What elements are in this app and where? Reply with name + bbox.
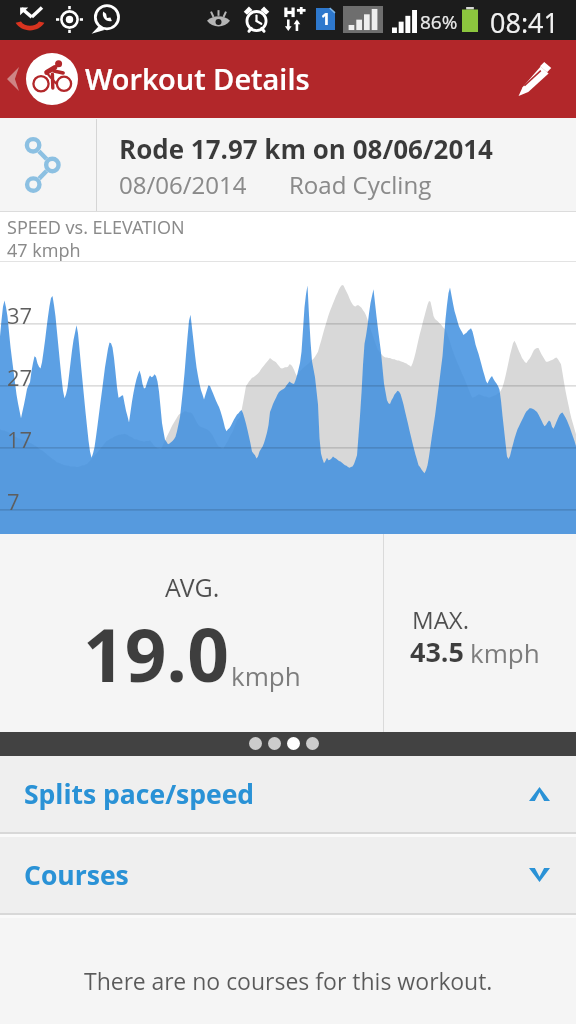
- staticText: Rode 17.97 km on 08/06/2014: [119, 131, 493, 166]
- button[interactable]: Back: [0, 40, 85, 118]
- button[interactable]: [287, 737, 300, 750]
- staticText: 1: [321, 8, 331, 30]
- staticText: Courses: [24, 857, 129, 893]
- staticText: kmph: [231, 658, 301, 693]
- staticText: Road Cycling: [289, 168, 432, 201]
- staticText: 27: [7, 362, 33, 392]
- button[interactable]: [268, 737, 281, 750]
- staticText: There are no courses for this workout.: [84, 965, 493, 996]
- staticText: 7: [7, 486, 20, 516]
- staticText: 43.5: [410, 633, 464, 670]
- button[interactable]: Route map: [0, 118, 96, 212]
- button[interactable]: Splits pace/speed: [0, 756, 576, 832]
- other: Collapse Splits pace/speed: [529, 787, 550, 801]
- button[interactable]: Courses: [0, 837, 576, 913]
- staticText: Workout Details: [85, 59, 310, 98]
- staticText: 37: [7, 300, 33, 330]
- staticText: MAX.: [412, 603, 470, 636]
- other: Expand Courses: [529, 868, 550, 882]
- staticText: 47 kmph: [7, 238, 81, 263]
- button[interactable]: [306, 737, 319, 750]
- other: Route map: [25, 137, 61, 193]
- staticText: 08:41: [490, 4, 559, 41]
- staticText: AVG.: [165, 570, 220, 604]
- other: Edit: [518, 62, 556, 96]
- button[interactable]: [249, 737, 262, 750]
- staticText: 86%: [420, 9, 458, 35]
- staticText: 08/06/2014: [119, 168, 247, 201]
- button[interactable]: Edit: [500, 40, 576, 118]
- staticText: kmph: [470, 635, 540, 670]
- staticText: 17: [7, 424, 33, 454]
- staticText: 19.0: [83, 604, 229, 703]
- staticText: Splits pace/speed: [24, 776, 255, 812]
- staticText: SPEED vs. ELEVATION: [7, 215, 185, 240]
- other: Back: [7, 67, 19, 91]
